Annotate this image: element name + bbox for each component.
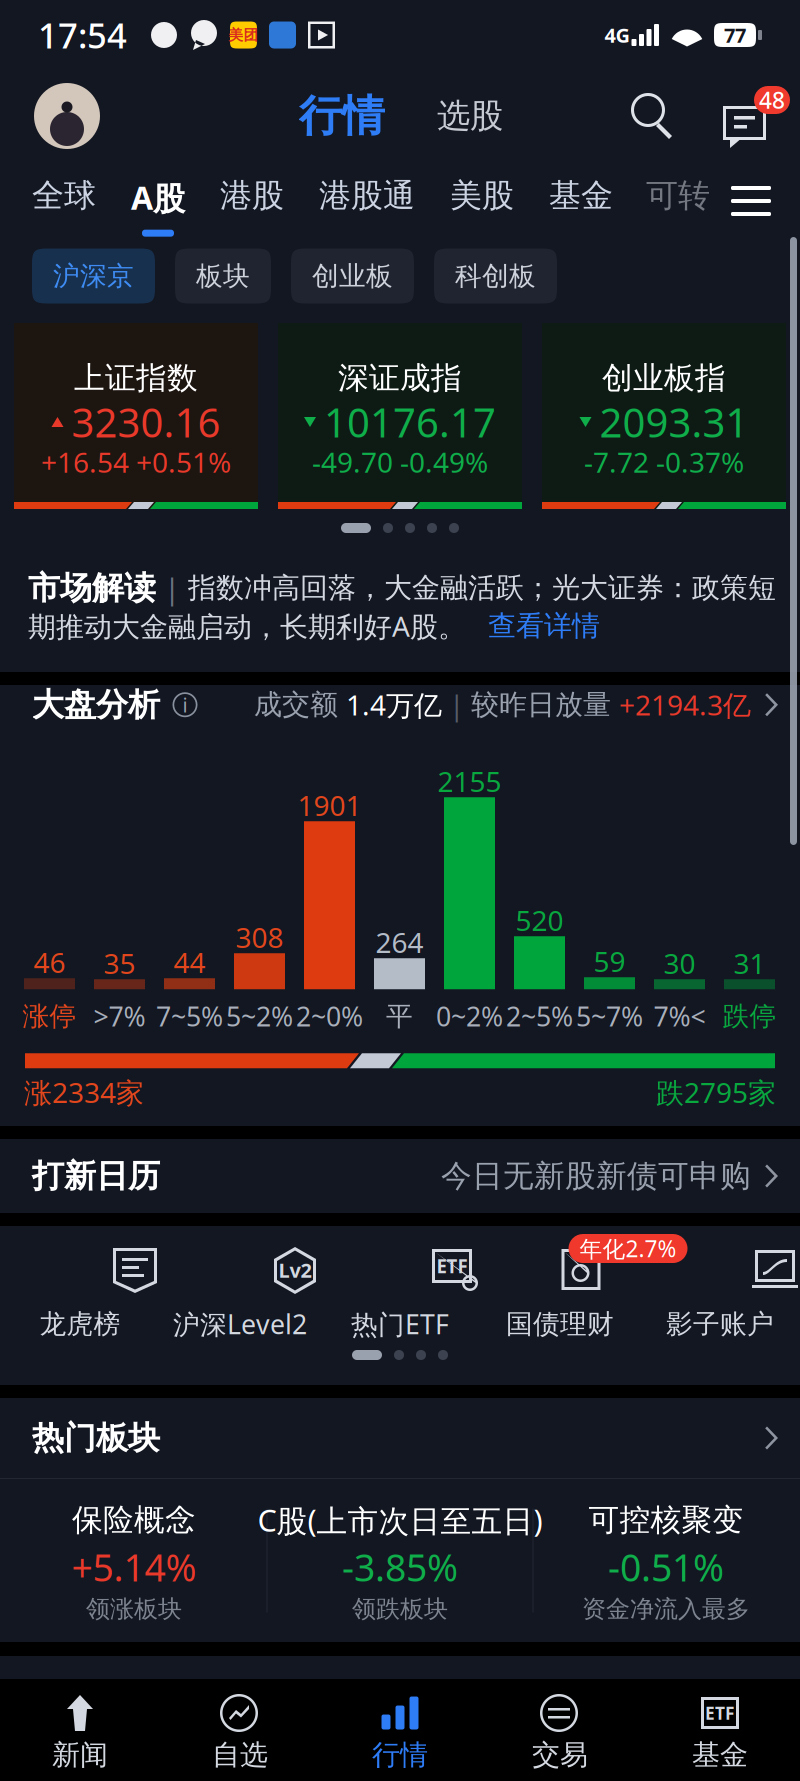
staticText: 科创板 bbox=[455, 260, 536, 292]
staticText: -49.70 -0.49% bbox=[312, 443, 488, 481]
staticText: | bbox=[156, 568, 188, 607]
button[interactable]: 科创板 bbox=[434, 248, 557, 303]
button[interactable]: 上证指数 bbox=[14, 323, 258, 509]
staticText: 美股 bbox=[450, 176, 514, 215]
staticText: 沪深京 bbox=[53, 260, 134, 292]
staticText: 指数冲高回落，大金融活跃；光大证券：政策短 bbox=[188, 571, 776, 605]
staticText: 48 bbox=[759, 85, 785, 115]
staticText: 上证指数 bbox=[74, 359, 198, 397]
staticText: 保险概念 bbox=[72, 1501, 196, 1539]
button[interactable]: Messages bbox=[711, 86, 778, 146]
button[interactable]: More bbox=[724, 162, 778, 240]
button[interactable]: 创业板 bbox=[291, 248, 414, 303]
staticText: 领跌板块 bbox=[352, 1594, 448, 1624]
staticText: 创业板指 bbox=[602, 359, 726, 397]
button[interactable]: 行情 bbox=[299, 90, 385, 142]
staticText: 自选 bbox=[212, 1738, 268, 1772]
button[interactable]: 市场解读 bbox=[0, 556, 800, 672]
staticText: A股 bbox=[131, 176, 185, 219]
button[interactable]: 可转 bbox=[646, 162, 710, 240]
button[interactable]: ETF bbox=[320, 1244, 480, 1342]
staticText: +2194.3亿 bbox=[619, 686, 751, 723]
staticText: 期推动大金融启动，长期利好A股。 bbox=[28, 607, 466, 645]
staticText: 涨停 bbox=[22, 1000, 76, 1033]
staticText: 7~5% bbox=[156, 998, 223, 1034]
staticText: 美团 bbox=[228, 26, 258, 44]
button[interactable]: 影子账户 bbox=[640, 1244, 800, 1342]
button[interactable]: 基金 bbox=[549, 162, 613, 240]
button[interactable]: 板块 bbox=[175, 248, 271, 303]
staticText: 热门ETF bbox=[351, 1306, 449, 1342]
button[interactable]: A股 bbox=[131, 162, 185, 240]
staticText: 深证成指 bbox=[338, 359, 462, 397]
staticText: 全球 bbox=[32, 176, 96, 215]
staticText: 今日无新股新债可申购 bbox=[441, 1157, 751, 1195]
staticText: 77 bbox=[724, 22, 746, 48]
staticText: ETF bbox=[705, 1701, 735, 1724]
button[interactable]: 打新日历 bbox=[0, 1139, 800, 1213]
staticText: 2155 bbox=[437, 763, 501, 800]
button[interactable]: 选股 bbox=[437, 95, 503, 136]
button[interactable]: 热门板块 bbox=[0, 1398, 800, 1478]
staticText: 4G bbox=[604, 22, 629, 48]
staticText: 涨2334家 bbox=[24, 1074, 144, 1111]
button[interactable]: 港股 bbox=[220, 162, 284, 240]
staticText: 308 bbox=[235, 919, 283, 956]
staticText: 成交额 bbox=[254, 688, 346, 722]
button[interactable]: 美股 bbox=[450, 162, 514, 240]
staticText: 46 bbox=[33, 944, 65, 981]
button[interactable]: 行情 bbox=[320, 1679, 480, 1781]
staticText: 市场解读 bbox=[28, 568, 156, 608]
staticText: -7.72 -0.37% bbox=[584, 443, 744, 481]
staticText: 选股 bbox=[437, 95, 503, 136]
button[interactable]: 自选 bbox=[160, 1679, 320, 1781]
button[interactable]: 全球 bbox=[32, 162, 96, 240]
staticText: +16.54 +0.51% bbox=[41, 443, 231, 481]
button[interactable]: ETF bbox=[640, 1679, 800, 1781]
staticText: +5.14% bbox=[71, 1542, 196, 1592]
staticText: 创业板 bbox=[312, 260, 393, 292]
staticText: 35 bbox=[103, 945, 135, 982]
staticText: 264 bbox=[375, 924, 423, 961]
staticText: 59 bbox=[593, 943, 625, 980]
button[interactable]: 深证成指 bbox=[278, 323, 522, 509]
button[interactable]: C股(上市次日至五日) bbox=[267, 1479, 532, 1642]
staticText: 7%< bbox=[653, 998, 705, 1034]
staticText: 大盘分析 bbox=[32, 685, 160, 724]
button[interactable]: Search bbox=[629, 91, 675, 141]
staticText: 行情 bbox=[372, 1738, 428, 1772]
staticText: 44 bbox=[173, 944, 205, 981]
staticText: 热门板块 bbox=[32, 1418, 160, 1458]
button[interactable]: 大盘分析 bbox=[0, 665, 800, 744]
button[interactable]: 年化2.7% bbox=[480, 1244, 640, 1342]
button[interactable]: 沪深京 bbox=[32, 248, 155, 303]
button[interactable]: 可控核聚变 bbox=[533, 1479, 798, 1642]
staticText: 年化2.7% bbox=[579, 1233, 676, 1263]
button[interactable]: Profile bbox=[34, 83, 100, 149]
staticText: 行情 bbox=[299, 90, 385, 142]
button[interactable]: 港股通 bbox=[319, 162, 415, 240]
staticText: 30 bbox=[663, 945, 695, 982]
staticText: i bbox=[182, 691, 187, 718]
staticText: 国债理财 bbox=[506, 1308, 614, 1340]
button[interactable]: 龙虎榜 bbox=[0, 1244, 160, 1342]
staticText: 5~7% bbox=[576, 998, 643, 1034]
staticText: 沪深Level2 bbox=[173, 1306, 307, 1342]
button[interactable]: 保险概念 bbox=[1, 1479, 266, 1642]
button[interactable]: 新闻 bbox=[0, 1679, 160, 1781]
staticText: | bbox=[442, 686, 471, 723]
staticText: 基金 bbox=[549, 176, 613, 215]
button[interactable]: Lv2 bbox=[160, 1244, 320, 1342]
staticText: >7% bbox=[93, 998, 145, 1034]
staticText: C股(上市次日至五日) bbox=[257, 1500, 542, 1540]
button[interactable]: 创业板指 bbox=[542, 323, 786, 509]
staticText: 0~2% bbox=[436, 998, 503, 1034]
staticText: 板块 bbox=[196, 260, 250, 292]
staticText: 31 bbox=[733, 945, 765, 982]
staticText: Lv2 bbox=[278, 1257, 311, 1283]
staticText: -3.85% bbox=[342, 1542, 458, 1592]
staticText: 1901 bbox=[297, 787, 361, 824]
staticText: 5~2% bbox=[226, 998, 293, 1034]
button[interactable]: 交易 bbox=[480, 1679, 640, 1781]
staticText: 520 bbox=[515, 902, 563, 939]
